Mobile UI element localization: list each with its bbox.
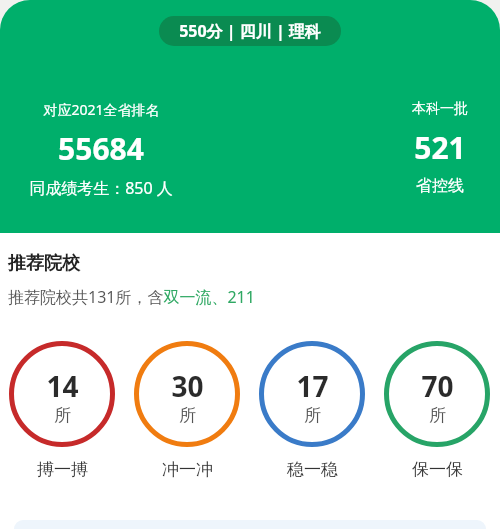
staticText: 14 xyxy=(46,367,79,405)
staticText: 所 xyxy=(179,405,196,426)
staticText: 55684 xyxy=(58,128,144,169)
button[interactable]: 70 xyxy=(384,341,490,480)
staticText: 稳一稳 xyxy=(287,459,338,480)
staticText: 17 xyxy=(296,367,329,405)
staticText: 所 xyxy=(429,405,446,426)
staticText: 所 xyxy=(54,405,71,426)
staticText: 本科一批 xyxy=(412,100,468,118)
button[interactable]: 17 xyxy=(259,341,365,480)
staticText: 521 xyxy=(414,127,466,168)
staticText: 推荐院校共131所，含双一流、211 xyxy=(8,286,255,308)
staticText: 搏一搏 xyxy=(37,459,88,480)
staticText: 同成绩考生：850 人 xyxy=(29,177,173,199)
staticText: 30 xyxy=(171,367,204,405)
staticText: 70 xyxy=(421,367,454,405)
button[interactable]: 30 xyxy=(134,341,240,480)
staticText: 所 xyxy=(304,405,321,426)
staticText: 推荐院校 xyxy=(8,252,80,275)
button[interactable]: 14 xyxy=(9,341,115,480)
staticText: 保一保 xyxy=(412,459,463,480)
staticText: 550分 | 四川 | 理科 xyxy=(179,20,321,42)
staticText: 冲一冲 xyxy=(162,459,213,480)
staticText: 对应2021全省排名 xyxy=(43,100,160,119)
button[interactable]: 550分 | 四川 | 理科 xyxy=(159,16,341,46)
staticText: 省控线 xyxy=(416,176,464,196)
